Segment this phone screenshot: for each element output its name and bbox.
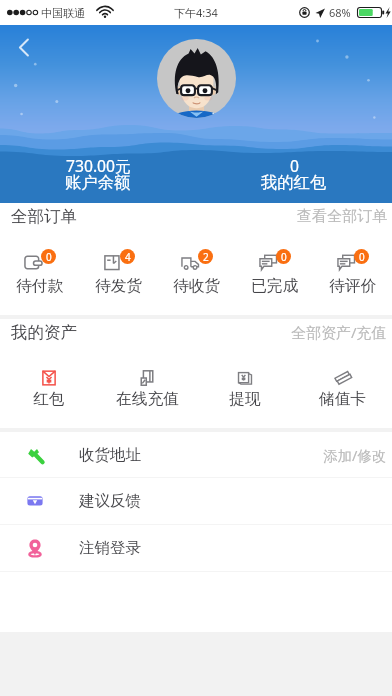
button[interactable]: 储值卡: [294, 345, 392, 409]
staticText: 0: [290, 155, 299, 176]
staticText: 中国联通: [41, 6, 85, 20]
staticText: 730.00元: [66, 155, 131, 176]
staticText: 2: [203, 250, 209, 264]
button[interactable]: 0: [0, 230, 79, 296]
staticText: 提现: [229, 389, 261, 409]
staticText: 待付款: [16, 276, 64, 296]
staticText: 待发货: [95, 276, 143, 296]
staticText: 0: [46, 250, 52, 264]
button[interactable]: 收货地址: [0, 432, 392, 477]
staticText: 收货地址: [79, 445, 141, 465]
staticText: 待评价: [329, 276, 377, 296]
staticText: 待收货: [173, 276, 221, 296]
staticText: 0: [359, 250, 365, 264]
staticText: 下午4:34: [174, 5, 218, 20]
button[interactable]: 建议反馈: [0, 478, 392, 524]
button[interactable]: 查看全部订单: [297, 207, 387, 226]
staticText: 我的红包: [261, 172, 327, 193]
staticText: 查看全部订单: [297, 207, 387, 226]
button[interactable]: 在线充值: [98, 345, 196, 409]
button[interactable]: 红包: [0, 345, 98, 409]
button[interactable]: 2: [158, 230, 236, 296]
button[interactable]: 提现: [196, 345, 294, 409]
staticText: 已完成: [251, 276, 299, 296]
staticText: 68%: [329, 5, 351, 20]
staticText: 添加/修改: [323, 445, 387, 465]
button[interactable]: 4: [79, 230, 158, 296]
staticText: 全部订单: [11, 206, 77, 227]
button[interactable]: 0: [196, 155, 392, 197]
staticText: 注销登录: [79, 538, 141, 558]
staticText: 4: [125, 250, 131, 264]
staticText: 储值卡: [319, 389, 367, 409]
staticText: 我的资产: [11, 322, 77, 343]
button[interactable]: 0: [314, 230, 392, 296]
staticText: 建议反馈: [79, 491, 141, 511]
button[interactable]: Back: [4, 27, 44, 67]
button[interactable]: 730.00元: [0, 155, 196, 197]
staticText: 0: [281, 250, 287, 264]
button[interactable]: 全部资产/充值: [291, 322, 387, 342]
staticText: 账户余额: [65, 172, 131, 193]
staticText: 红包: [33, 389, 65, 409]
button[interactable]: 0: [236, 230, 314, 296]
button[interactable]: 注销登录: [0, 525, 392, 571]
button[interactable]: Avatar: [157, 39, 236, 118]
staticText: 全部资产/充值: [291, 322, 387, 342]
staticText: 在线充值: [116, 389, 179, 409]
